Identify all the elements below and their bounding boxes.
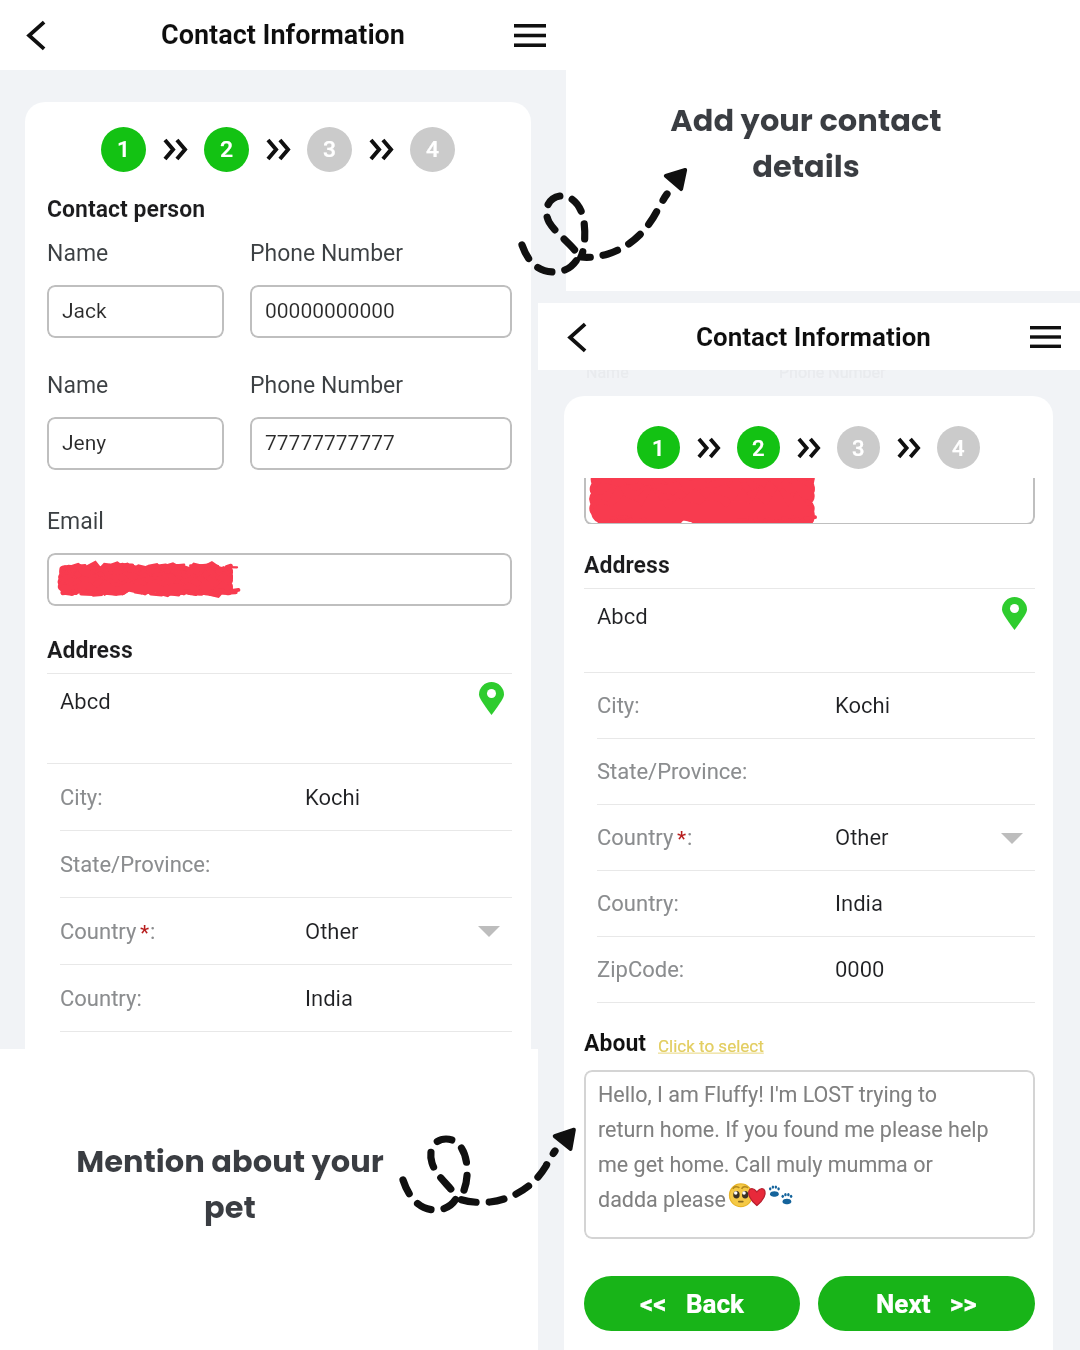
staticText: Phone Number: [250, 372, 404, 399]
button[interactable]: Country: [60, 898, 512, 965]
staticText: 1: [117, 136, 131, 163]
staticText: India: [835, 891, 883, 917]
staticText: :: [150, 919, 156, 945]
button[interactable]: Hello, I am Fluffy! I'm LOST trying to r…: [584, 1070, 1035, 1239]
staticText: Country:: [60, 986, 142, 1012]
button[interactable]: 3: [307, 127, 352, 172]
staticText: Jack: [62, 299, 107, 324]
button[interactable]: [47, 553, 512, 606]
staticText: City:: [60, 785, 103, 811]
staticText: Country: [60, 919, 137, 945]
staticText: Name: [47, 372, 250, 399]
staticText: State/Province:: [60, 852, 211, 878]
staticText: Country:: [597, 891, 679, 917]
button[interactable]: ZipCode:: [597, 937, 1035, 1003]
staticText: 2: [220, 136, 234, 163]
staticText: State/Province:: [597, 759, 748, 785]
staticText: Name: [586, 363, 629, 382]
staticText: 3: [852, 435, 865, 461]
button[interactable]: Click to select: [658, 1036, 764, 1056]
button[interactable]: State/Province:: [60, 831, 512, 898]
button[interactable]: [584, 478, 1035, 524]
staticText: :: [687, 825, 693, 851]
staticText: India: [305, 986, 353, 1012]
staticText: 0000: [835, 957, 885, 983]
staticText: Jeny: [62, 431, 107, 456]
button[interactable]: City:: [597, 673, 1035, 739]
button[interactable]: 00000000000: [250, 285, 512, 338]
button[interactable]: 77777777777: [250, 417, 512, 470]
staticText: Other: [305, 919, 359, 945]
button[interactable]: Jack: [47, 285, 224, 338]
staticText: Hello, I am Fluffy! I'm LOST trying to r…: [598, 1082, 989, 1212]
staticText: City:: [597, 693, 640, 719]
staticText: Contact Information: [696, 322, 931, 352]
button[interactable]: 3: [837, 426, 880, 469]
button[interactable]: 4: [410, 127, 455, 172]
staticText: Next >>: [876, 1289, 977, 1319]
staticText: Address: [47, 637, 133, 664]
staticText: << Back: [640, 1289, 744, 1319]
button[interactable]: 1: [101, 127, 146, 172]
staticText: Kochi: [305, 785, 361, 811]
staticText: Kochi: [835, 693, 891, 719]
staticText: Abcd: [597, 604, 648, 630]
staticText: Phone Number: [250, 240, 404, 267]
staticText: Country: [597, 825, 674, 851]
staticText: 3: [323, 136, 337, 163]
staticText: Address: [584, 552, 670, 579]
staticText: Contact Information: [161, 19, 405, 51]
button[interactable]: Country:: [597, 871, 1035, 937]
staticText: 4: [426, 136, 440, 163]
staticText: 77777777777: [265, 431, 395, 456]
button[interactable]: Menu: [1022, 314, 1068, 360]
button[interactable]: 4: [937, 426, 980, 469]
button[interactable]: << Back: [584, 1276, 800, 1331]
button[interactable]: 2: [204, 127, 249, 172]
staticText: Other: [835, 825, 889, 851]
button[interactable]: 2: [737, 426, 780, 469]
staticText: 00000000000: [265, 299, 395, 324]
button[interactable]: Back: [554, 314, 600, 360]
button[interactable]: Country: [597, 805, 1035, 871]
staticText: Name: [47, 240, 250, 267]
staticText: ZipCode:: [597, 957, 685, 983]
button[interactable]: Country:: [60, 965, 512, 1032]
staticText: 2: [752, 435, 765, 461]
button[interactable]: Jeny: [47, 417, 224, 470]
staticText: Add your contact details: [611, 99, 1001, 187]
button[interactable]: City:: [60, 764, 512, 831]
staticText: 4: [952, 435, 965, 461]
staticText: Abcd: [60, 689, 111, 715]
staticText: Email: [47, 508, 104, 535]
staticText: About: [584, 1030, 647, 1057]
button[interactable]: Back: [12, 11, 60, 59]
button[interactable]: Next >>: [818, 1276, 1035, 1331]
staticText: 1: [652, 435, 665, 461]
staticText: *: [140, 921, 150, 944]
button[interactable]: State/Province:: [597, 739, 1035, 805]
staticText: Contact person: [47, 196, 206, 223]
staticText: *: [677, 827, 687, 850]
staticText: Phone Number: [779, 363, 886, 382]
staticText: Mention about your pet: [50, 1140, 410, 1228]
button[interactable]: 1: [637, 426, 680, 469]
button[interactable]: Menu: [506, 11, 554, 59]
